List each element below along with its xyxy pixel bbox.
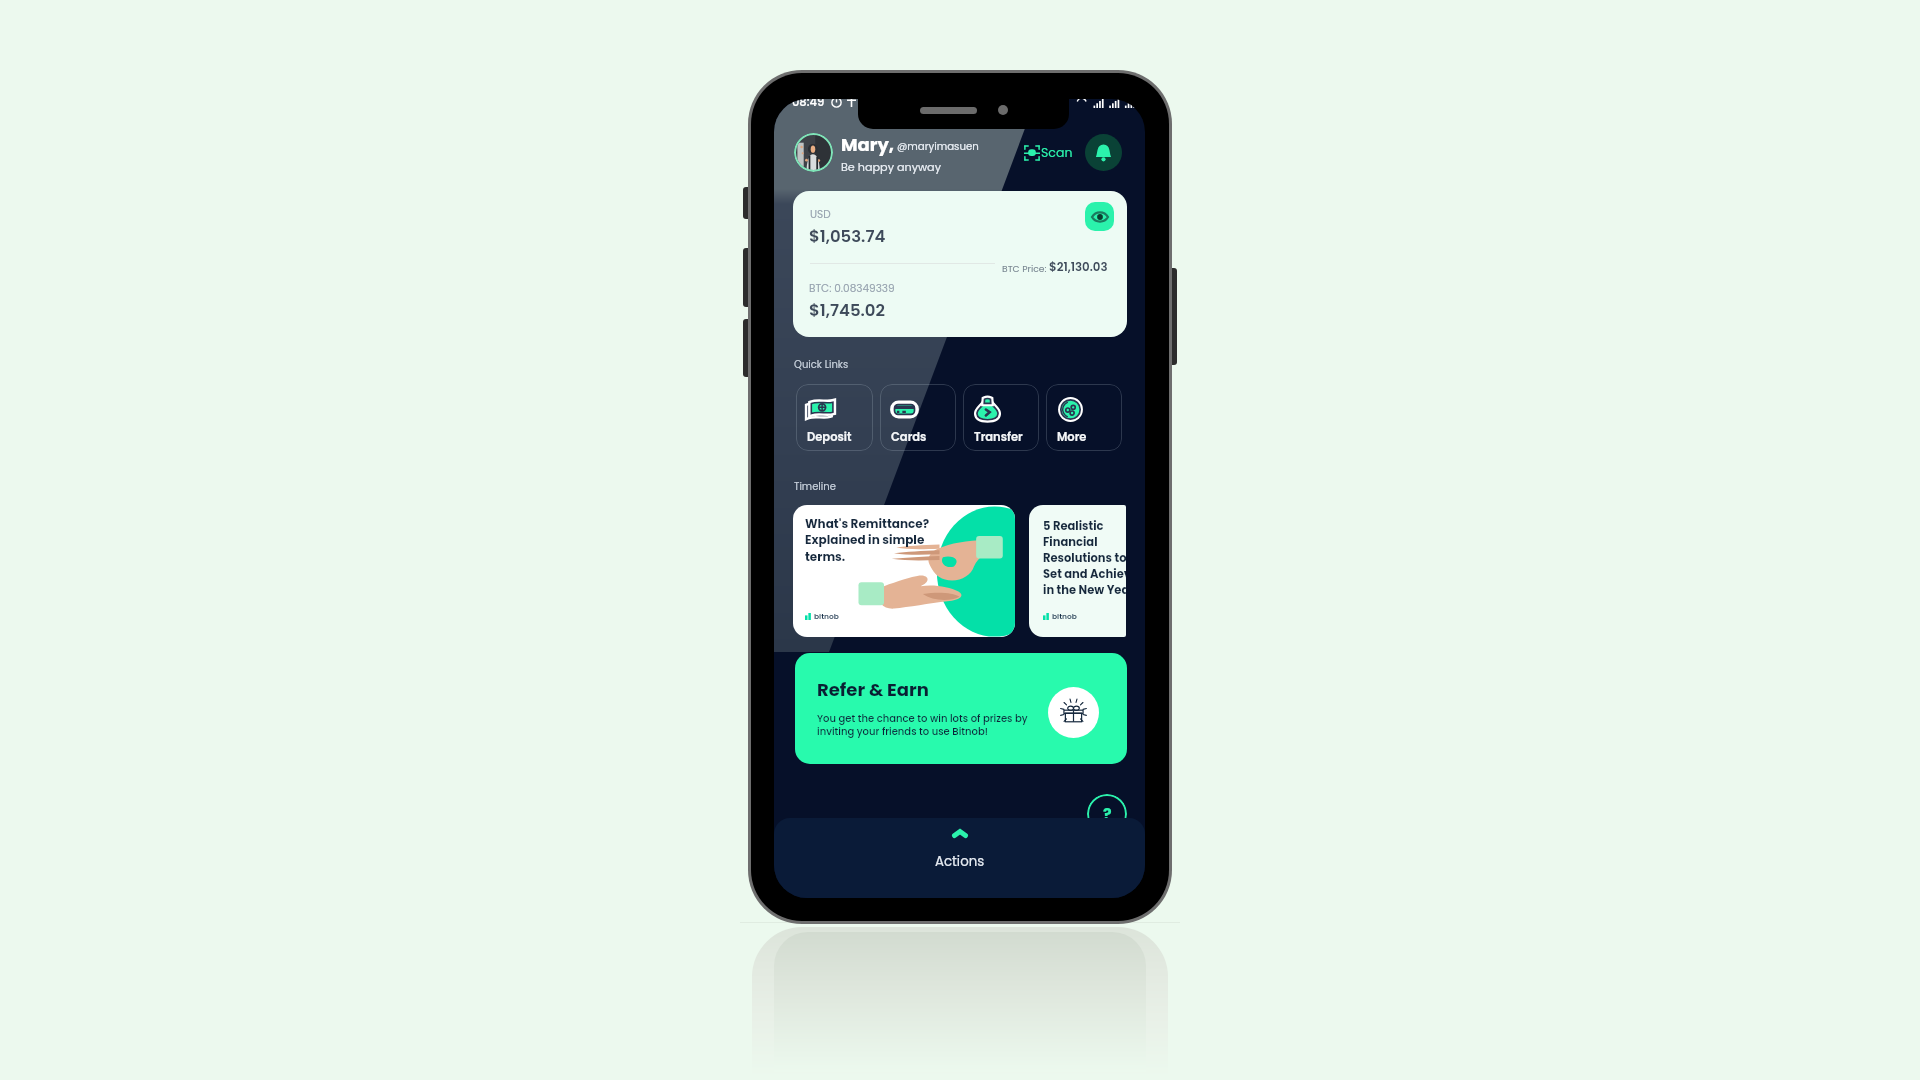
staticText: $1,053.74 xyxy=(809,225,886,248)
staticText: Actions xyxy=(935,852,985,871)
staticText: bitnob xyxy=(814,611,839,621)
button[interactable]: Notifications xyxy=(1085,134,1122,171)
staticText: Be happy anyway xyxy=(841,159,941,175)
staticText: Mary, xyxy=(841,132,894,157)
button[interactable]: 5 Realistic Financial Resolutions to Set… xyxy=(1029,505,1126,637)
button[interactable]: Deposit xyxy=(796,384,873,451)
staticText: @maryimasuen xyxy=(897,139,979,153)
staticText: Deposit xyxy=(807,429,852,445)
staticText: What's Remittance? Explained in simple t… xyxy=(805,515,930,566)
staticText: $21,130.03 xyxy=(1049,259,1108,276)
button[interactable]: Refer & Earn xyxy=(795,653,1127,764)
button[interactable]: Scan xyxy=(1021,141,1076,164)
button[interactable]: Actions xyxy=(774,818,1145,898)
button[interactable]: Help xyxy=(1087,794,1127,834)
staticText: More xyxy=(1057,429,1087,445)
button[interactable]: Transfer xyxy=(963,384,1039,451)
staticText: Cards xyxy=(891,429,927,445)
staticText: Refer & Earn xyxy=(817,677,929,702)
staticText: Transfer xyxy=(974,429,1023,445)
staticText: 08:49 xyxy=(792,99,825,110)
button[interactable]: USD xyxy=(793,191,1127,337)
staticText: You get the chance to win lots of prizes… xyxy=(817,711,1028,739)
button[interactable]: Profile xyxy=(794,133,833,172)
staticText: ? xyxy=(1103,803,1112,825)
staticText: BTC: 0.08349339 xyxy=(809,281,895,296)
staticText: Timeline xyxy=(794,479,836,493)
staticText: Quick Links xyxy=(794,357,849,371)
button[interactable]: What's Remittance? Explained in simple t… xyxy=(793,505,1015,637)
staticText: $1,745.02 xyxy=(809,299,885,322)
button[interactable]: Cards xyxy=(880,384,956,451)
staticText: USD xyxy=(810,207,831,222)
staticText: bitnob xyxy=(1052,611,1077,621)
button[interactable]: More xyxy=(1046,384,1122,451)
staticText: BTC Price: xyxy=(1002,262,1049,275)
staticText: 5 Realistic Financial Resolutions to Set… xyxy=(1043,518,1126,598)
staticText: Scan xyxy=(1041,144,1073,161)
button[interactable]: Toggle balance visibility xyxy=(1085,202,1114,231)
